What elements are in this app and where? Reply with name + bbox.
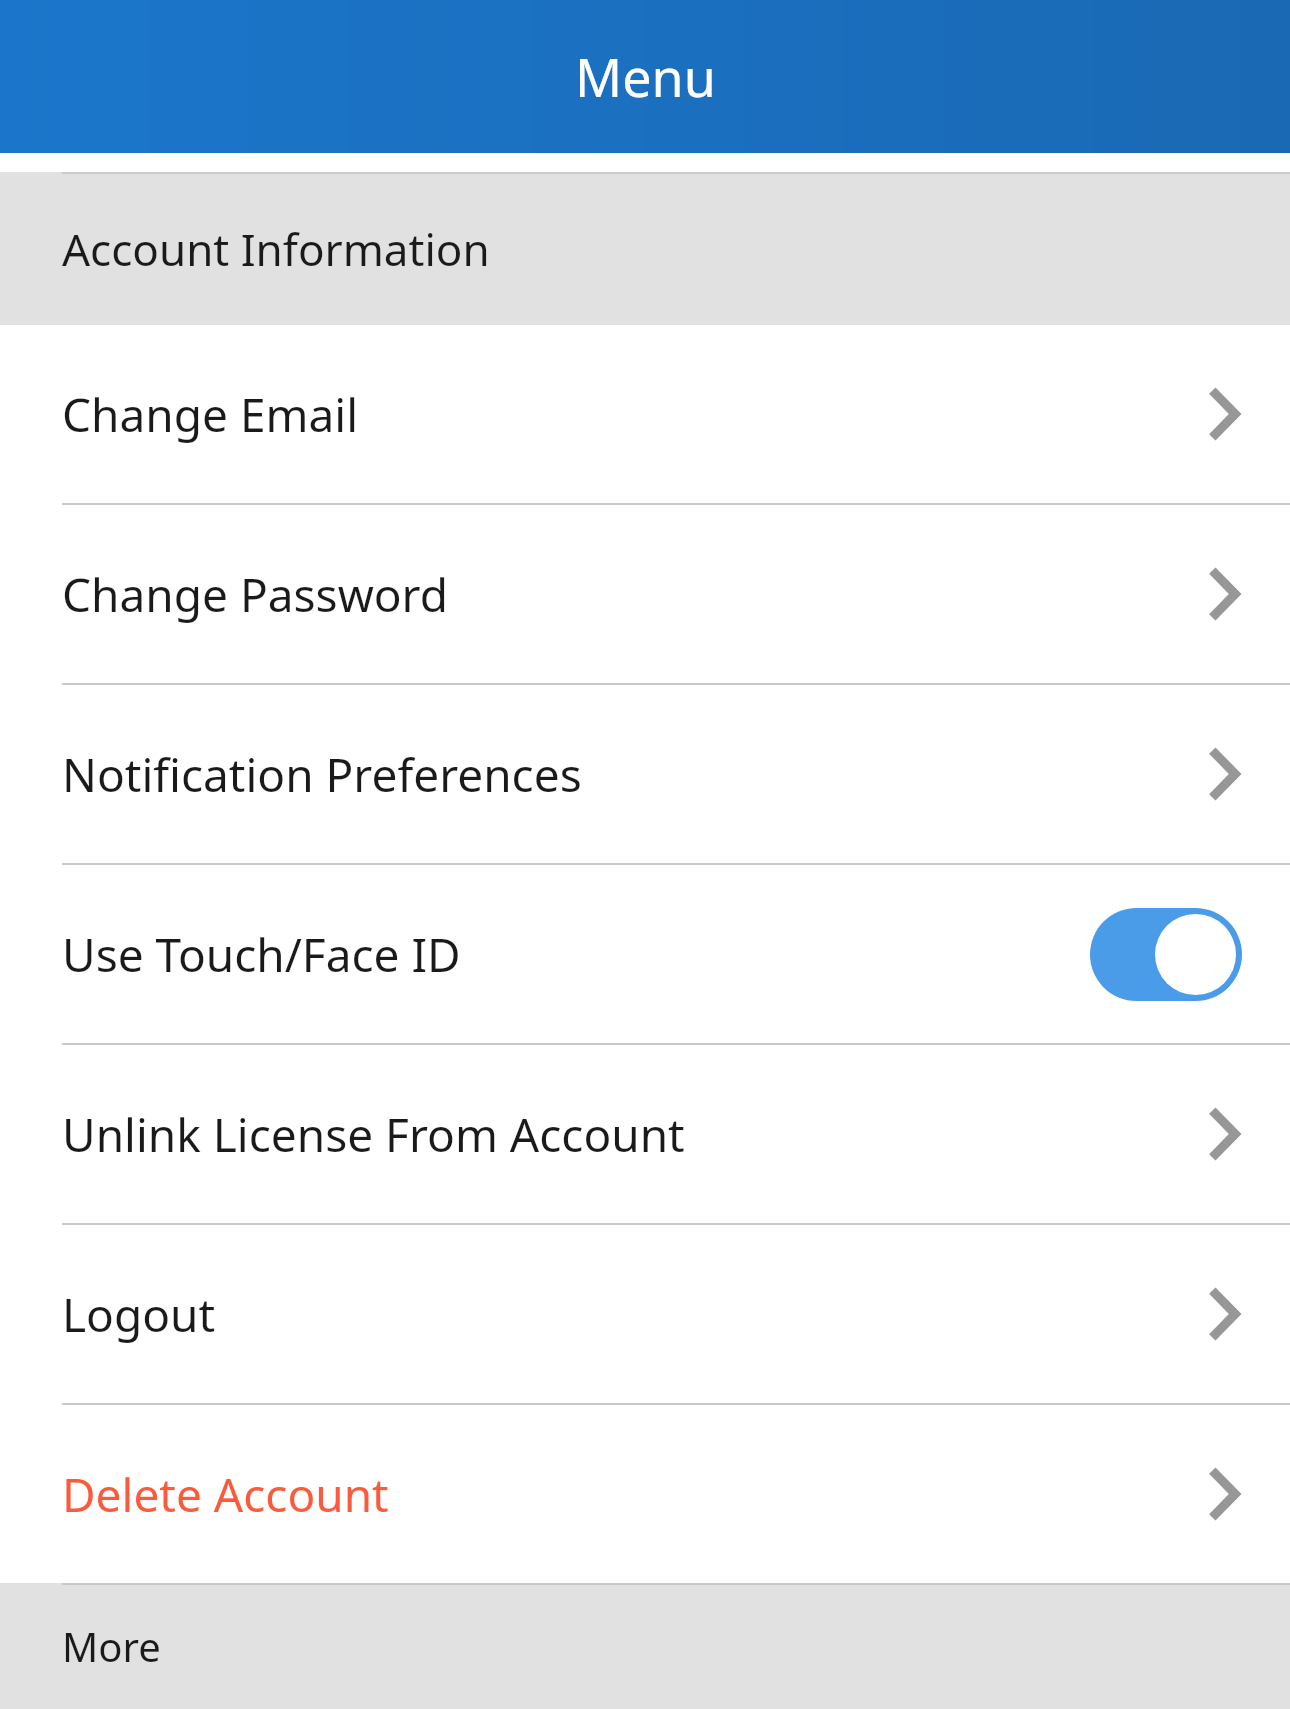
button[interactable]: Change Email <box>0 325 1290 503</box>
button[interactable]: Use Touch/Face ID <box>0 865 1290 1043</box>
button[interactable]: Unlink License From Account <box>0 1045 1290 1223</box>
staticText: Logout <box>62 1283 216 1346</box>
button[interactable]: Use Touch or Face ID, on <box>1090 908 1242 1001</box>
staticText: Account Information <box>62 219 490 279</box>
staticText: More <box>62 1619 161 1673</box>
staticText: Menu <box>575 41 716 112</box>
staticText: Notification Preferences <box>62 743 582 806</box>
staticText: Unlink License From Account <box>62 1103 685 1166</box>
button[interactable]: Change Password <box>0 505 1290 683</box>
staticText: Change Password <box>62 563 448 626</box>
staticText: Use Touch/Face ID <box>62 923 461 986</box>
staticText: Change Email <box>62 383 359 446</box>
button[interactable]: Notification Preferences <box>0 685 1290 863</box>
staticText: Delete Account <box>62 1463 389 1526</box>
button[interactable]: Logout <box>0 1225 1290 1403</box>
button[interactable]: Delete Account <box>0 1405 1290 1583</box>
